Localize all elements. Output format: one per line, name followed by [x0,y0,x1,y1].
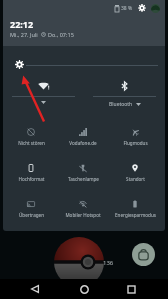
button[interactable]: Mobiler Hotspot [57,195,109,227]
button[interactable]: Standort [109,159,161,191]
staticText: 38 % [121,5,133,12]
staticText: Standort [126,176,145,182]
staticText: 22:12 [10,18,34,30]
button[interactable]: Recent apps [117,279,145,299]
button[interactable]: Vodafone.de [57,123,109,155]
button[interactable]: Back [21,279,49,299]
staticText: Bluetooth [109,101,133,108]
staticText: Nicht stören [18,140,45,146]
staticText: 136 [103,259,114,267]
button[interactable]: Bluetooth [84,80,165,112]
button[interactable]: Hochformat [5,159,57,191]
button[interactable]: Home [70,279,98,299]
button[interactable]: Energiesparmodus [109,195,161,227]
staticText: Hochformat [18,176,45,182]
staticText: Do., 07:15 [48,31,74,38]
staticText: Energiesparmodus [115,212,156,218]
button[interactable]: Taschenlampe [57,159,109,191]
button[interactable]: App shortcut [132,243,155,266]
staticText: Mi., 27. Juli [10,31,38,38]
staticText: Flugmodus [123,140,148,146]
button[interactable]: WLAN [3,80,84,112]
button[interactable]: Brightness [3,56,165,74]
staticText: Vodafone.de [69,140,97,146]
button[interactable]: Nicht stören [5,123,57,155]
staticText: Mobiler Hotspot [65,212,101,218]
staticText: Taschenlampe [68,176,99,182]
button[interactable]: Flugmodus [109,123,161,155]
staticText: Übertragen [19,212,44,218]
button[interactable]: Übertragen [5,195,57,227]
